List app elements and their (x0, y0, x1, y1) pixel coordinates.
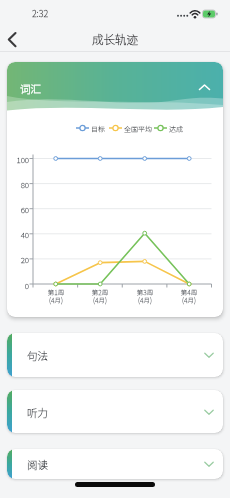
staticText: 40 (11, 229, 29, 241)
staticText: 100 (11, 154, 29, 166)
staticText: 句法 (27, 348, 48, 363)
button[interactable]: 听力 (7, 390, 223, 433)
staticText: 第4周 (4月) (175, 287, 203, 304)
staticText: 第2周 (4月) (86, 287, 114, 304)
button[interactable]: 词汇 (7, 62, 223, 112)
staticText: 80 (11, 179, 29, 191)
staticText: 20 (11, 254, 29, 266)
staticText: 0 (11, 280, 29, 292)
staticText: 阅读 (27, 457, 48, 472)
staticText: 第1周 (4月) (42, 287, 70, 304)
button[interactable]: 句法 (7, 333, 223, 377)
staticText: 2:32 (28, 7, 52, 20)
staticText: 第3周 (4月) (131, 287, 159, 304)
button[interactable] (2, 30, 24, 50)
staticText: 成长轨迹 (0, 31, 230, 48)
staticText: 60 (11, 204, 29, 216)
staticText: 词汇 (20, 81, 41, 96)
staticText: 达成 (169, 124, 183, 134)
staticText: 全国平均 (124, 124, 152, 134)
staticText: 听力 (27, 405, 48, 420)
button[interactable]: 阅读 (7, 449, 223, 479)
staticText: 目标 (91, 124, 105, 134)
